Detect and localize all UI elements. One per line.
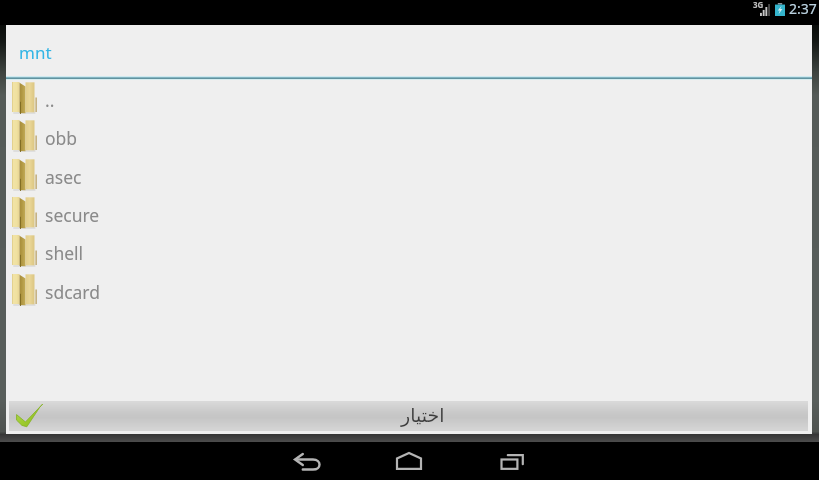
staticText: 3G (753, 0, 764, 10)
button[interactable]: obb (6, 116, 812, 154)
staticText: sdcard (45, 280, 101, 304)
button[interactable]: Back (275, 443, 339, 480)
button[interactable]: .. (6, 78, 812, 116)
button[interactable]: Recents (480, 443, 544, 480)
button[interactable]: sdcard (6, 270, 812, 308)
staticText: asec (45, 165, 82, 189)
staticText: secure (45, 203, 100, 227)
staticText: shell (45, 241, 84, 265)
button[interactable]: asec (6, 155, 812, 193)
button[interactable]: shell (6, 231, 812, 269)
button[interactable]: Home (377, 442, 441, 480)
staticText: mnt (19, 41, 52, 64)
staticText: .. (45, 88, 55, 112)
staticText: اختيار (401, 404, 445, 426)
staticText: obb (45, 126, 78, 150)
button[interactable]: اختيار (9, 401, 808, 431)
button[interactable]: secure (6, 193, 812, 231)
staticText: 2:37 (789, 0, 817, 18)
